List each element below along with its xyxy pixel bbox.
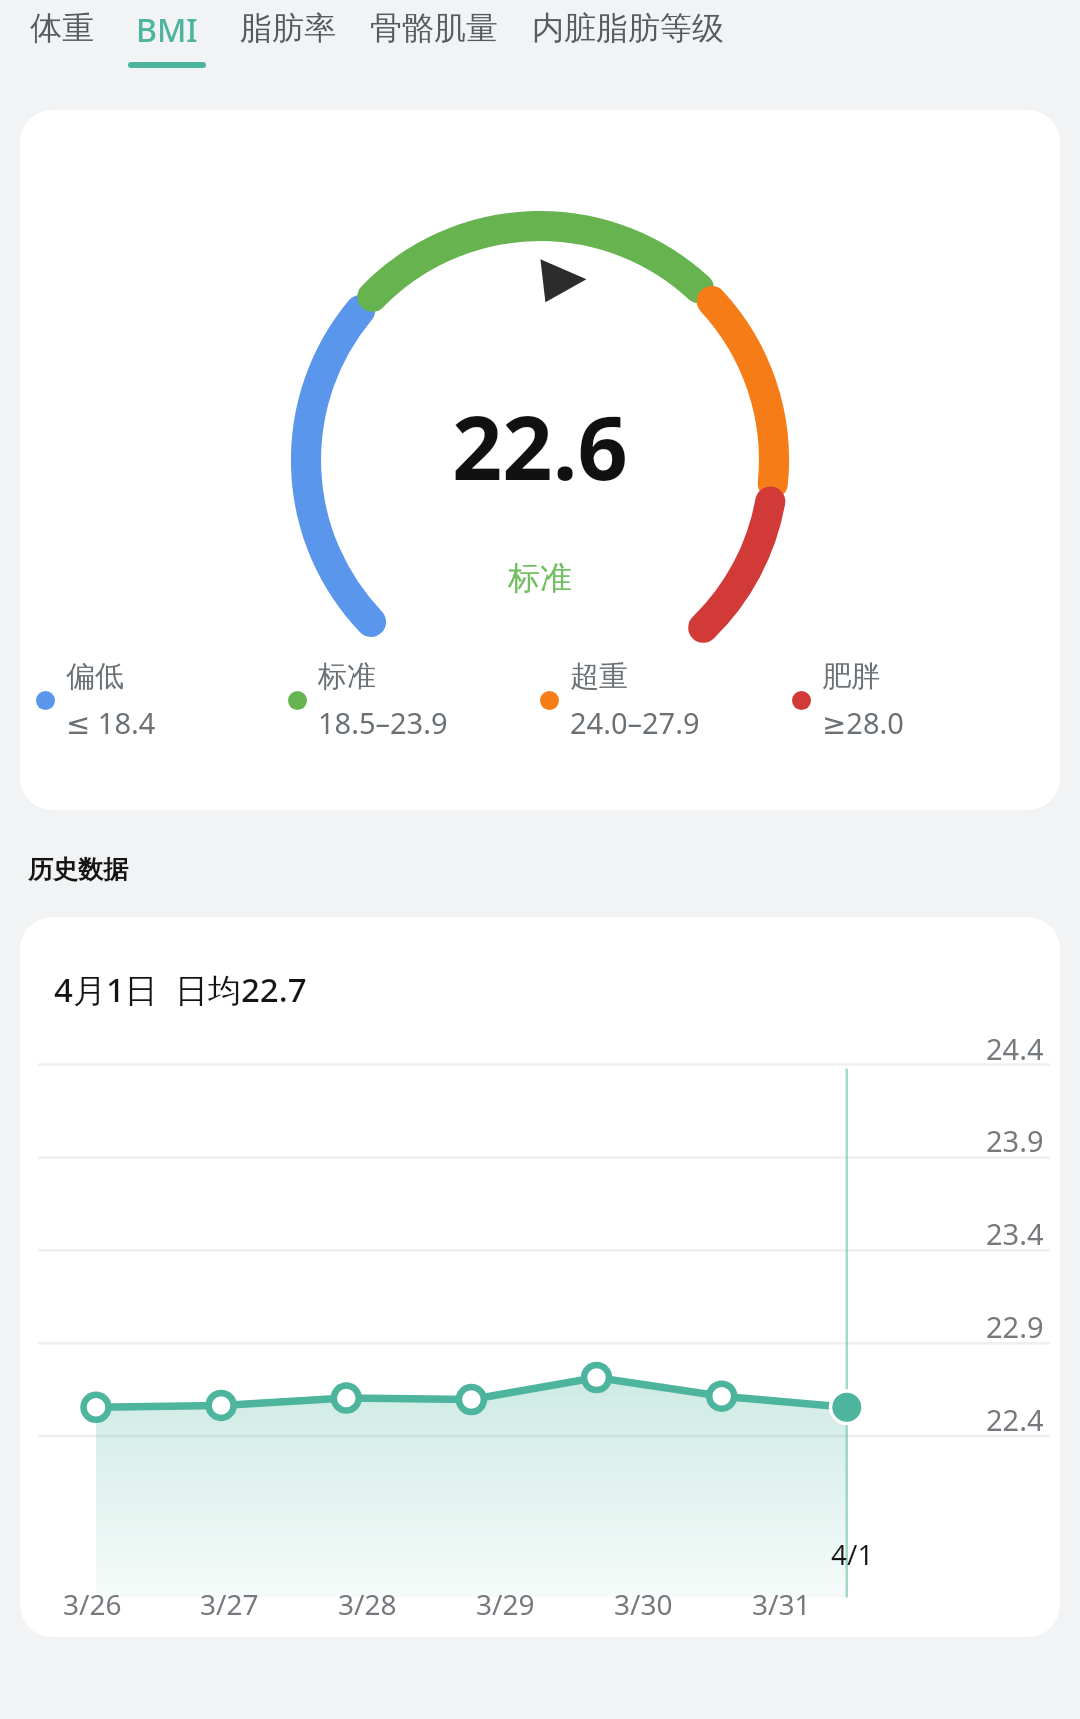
staticText: 23.4 <box>986 1214 1044 1253</box>
button[interactable]: 偏低 <box>36 658 288 742</box>
button[interactable]: 内脏脂肪等级 <box>532 0 724 58</box>
button[interactable]: 骨骼肌量 <box>370 0 498 58</box>
staticText: 脂肪率 <box>240 8 336 48</box>
staticText: 22.4 <box>986 1400 1044 1439</box>
staticText: 24.0–27.9 <box>570 703 700 742</box>
staticText: 标准 <box>318 658 376 695</box>
staticText: 22.9 <box>986 1307 1044 1346</box>
staticText: 体重 <box>30 8 94 48</box>
staticText: 超重 <box>570 658 628 695</box>
button[interactable]: BMI <box>128 0 206 68</box>
button[interactable]: 体重 <box>30 0 94 58</box>
staticText: 偏低 <box>66 658 124 695</box>
staticText: 肥胖 <box>822 658 880 695</box>
staticText: 内脏脂肪等级 <box>532 8 724 48</box>
staticText: 24.4 <box>986 1029 1044 1068</box>
staticText: 23.9 <box>986 1121 1044 1160</box>
button[interactable]: 标准 <box>288 658 540 742</box>
button[interactable]: 肥胖 <box>792 658 1044 742</box>
staticText: 3/30 <box>614 1585 673 1623</box>
staticText: 骨骼肌量 <box>370 8 498 48</box>
staticText: 22.6 <box>452 386 628 506</box>
staticText: 18.5–23.9 <box>318 703 448 742</box>
staticText: 3/29 <box>476 1585 535 1623</box>
staticText: 3/26 <box>63 1585 122 1623</box>
staticText: 3/31 <box>752 1585 811 1623</box>
staticText: 历史数据 <box>28 854 128 885</box>
button[interactable]: 4月1日 日均22.7 <box>20 917 1060 1637</box>
button[interactable]: 超重 <box>540 658 792 742</box>
staticText: 4/1 <box>831 1535 874 1573</box>
staticText: BMI <box>136 8 198 52</box>
staticText: 3/27 <box>200 1585 259 1623</box>
staticText: 标准 <box>508 558 572 598</box>
staticText: 4月1日 日均22.7 <box>54 967 307 1012</box>
staticText: 3/28 <box>338 1585 397 1623</box>
staticText: ≤ 18.4 <box>66 703 156 742</box>
button[interactable]: 22.6 <box>20 110 1060 810</box>
staticText: ≥28.0 <box>822 703 904 742</box>
button[interactable]: 脂肪率 <box>240 0 336 58</box>
